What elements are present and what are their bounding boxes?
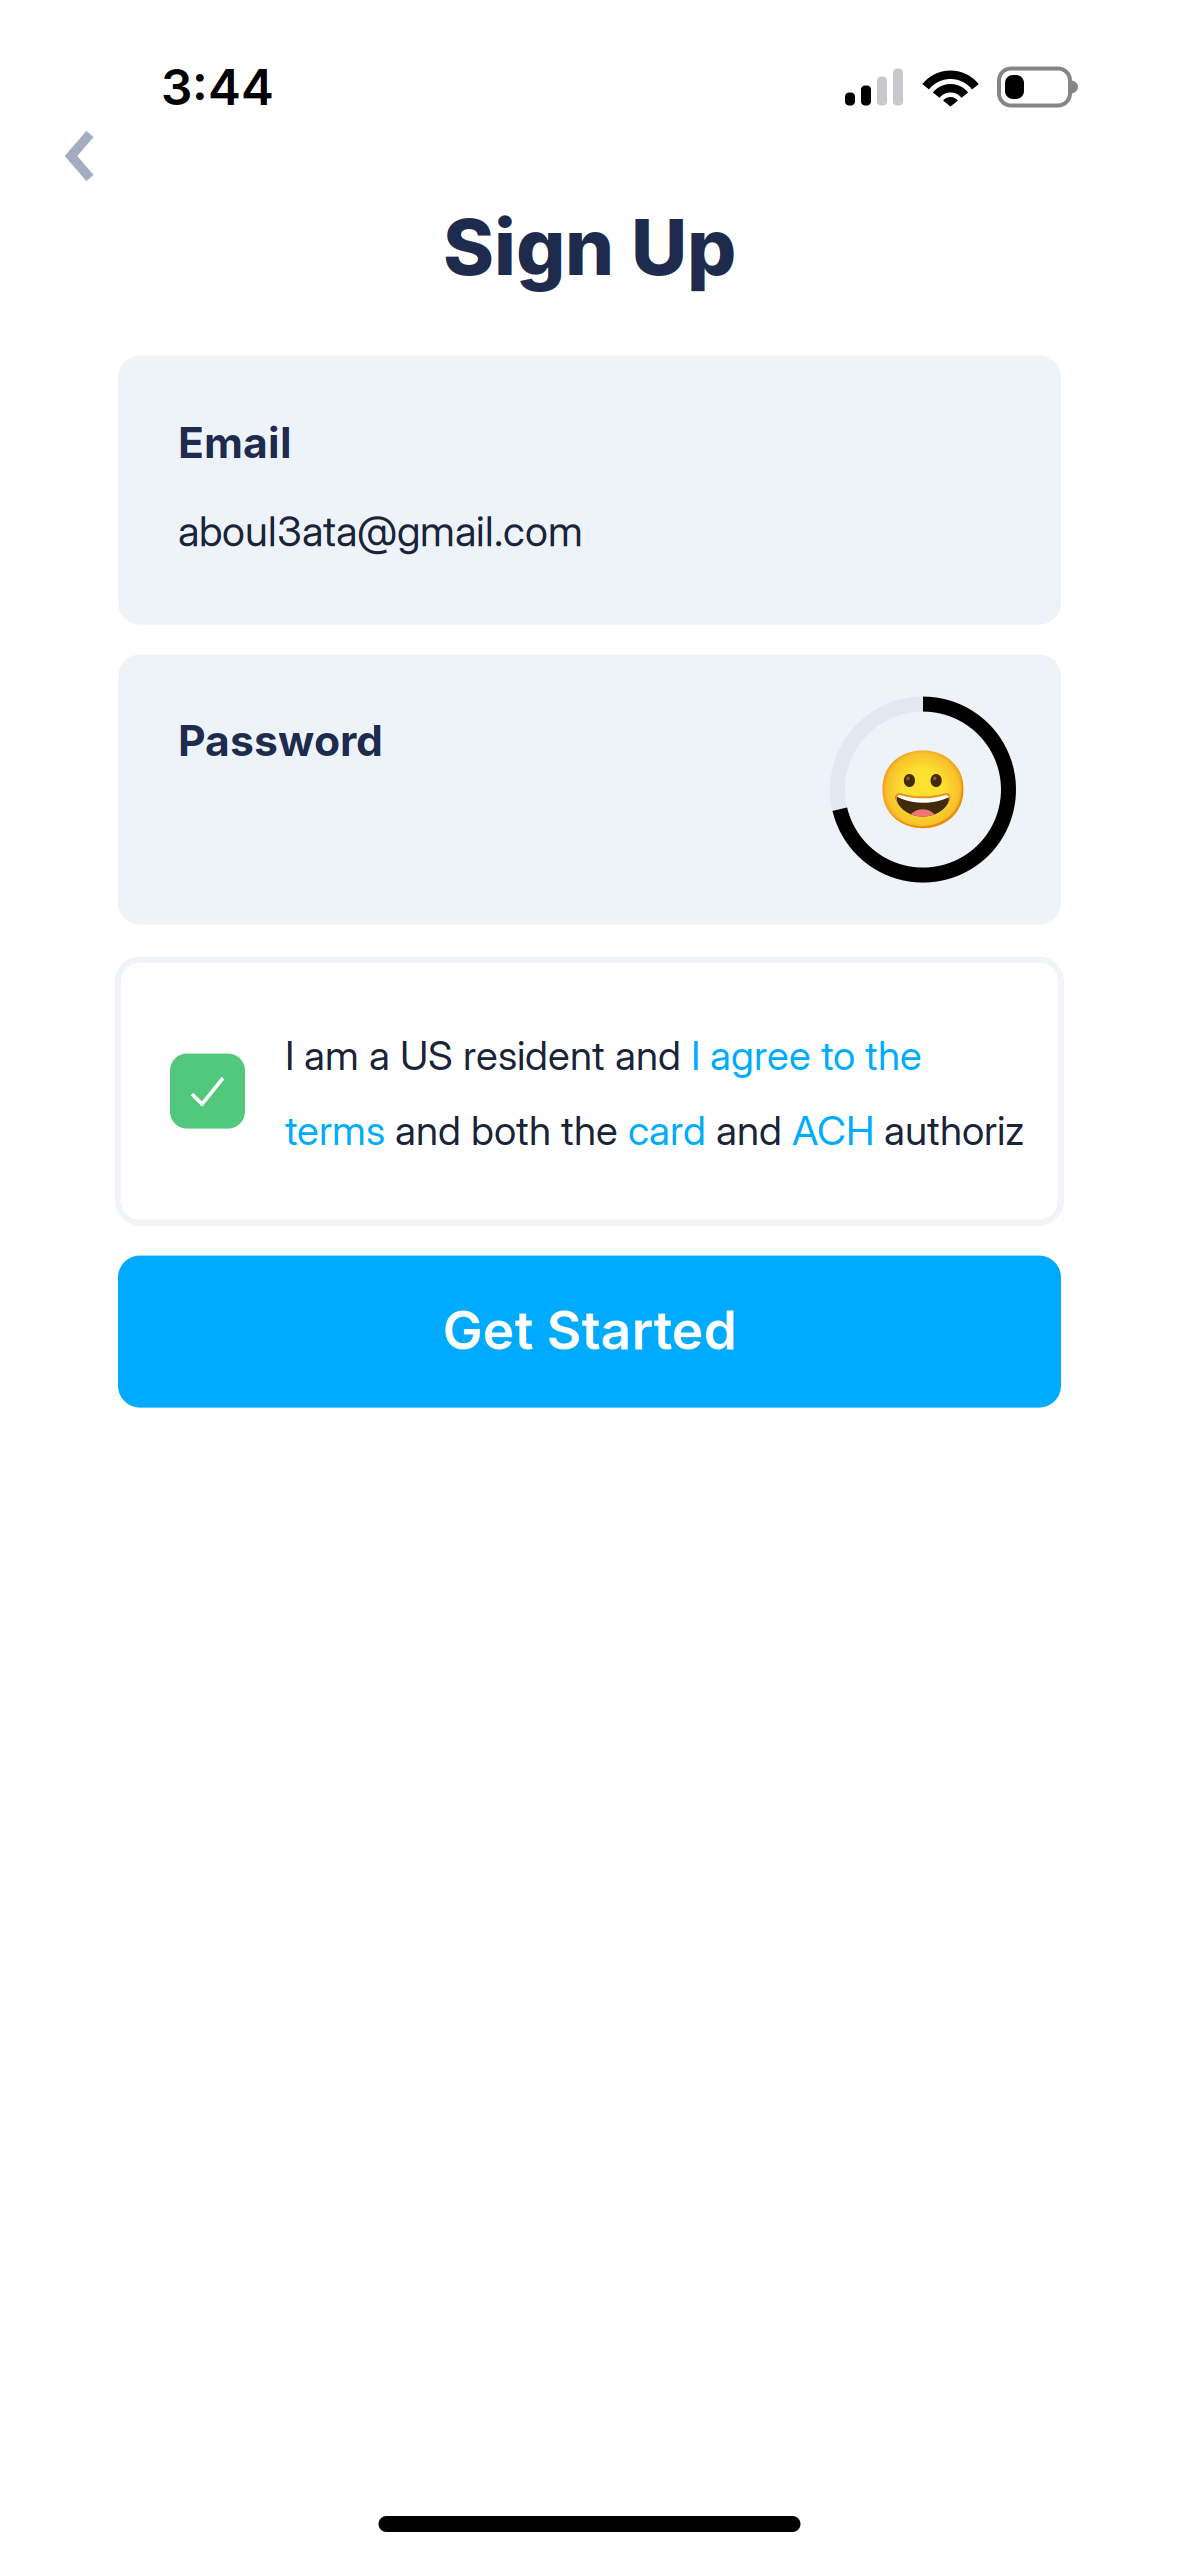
staticText: I agree to the — [691, 1031, 922, 1080]
staticText: 3:44 — [161, 57, 274, 117]
staticText: Email — [178, 417, 292, 468]
staticText: card — [628, 1106, 706, 1155]
staticText: Password — [178, 715, 383, 766]
staticText: Sign Up — [443, 200, 736, 294]
staticText: aboul3ata@gmail.com — [178, 506, 583, 556]
staticText: Get Started — [442, 1298, 736, 1362]
button[interactable]: Back — [0, 111, 139, 195]
button[interactable]: Get Started — [118, 1256, 1061, 1408]
staticText: terms — [285, 1106, 385, 1155]
staticText: authoriz — [874, 1106, 1024, 1155]
staticText: and — [706, 1106, 792, 1155]
staticText: and both the — [385, 1106, 628, 1155]
staticText: 😀 — [875, 745, 970, 834]
staticText: I am a US resident and — [285, 1031, 691, 1080]
button[interactable]: I am a US resident and — [118, 960, 1061, 1223]
staticText: ACH — [792, 1106, 874, 1155]
